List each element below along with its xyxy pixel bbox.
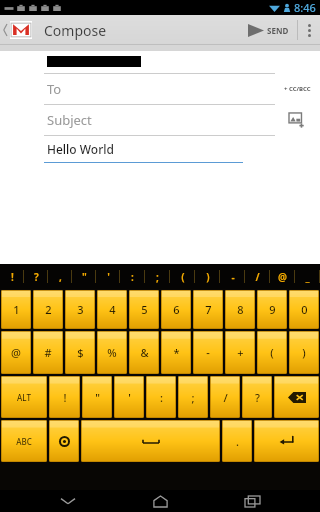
- button[interactable]: !: [49, 376, 80, 418]
- staticText: ;: [156, 270, 159, 284]
- staticText: ": [82, 270, 87, 284]
- button[interactable]: 1: [1, 290, 31, 329]
- button[interactable]: 7: [193, 290, 223, 329]
- staticText: ": [95, 390, 100, 405]
- staticText: _: [305, 270, 310, 284]
- button[interactable]: Enter: [254, 420, 319, 462]
- button[interactable]: 0: [289, 290, 319, 329]
- button[interactable]: ': [96, 264, 120, 289]
- button[interactable]: *: [161, 331, 191, 374]
- button[interactable]: %: [97, 331, 127, 374]
- button[interactable]: +: [225, 331, 255, 374]
- staticText: SEND: [267, 25, 289, 36]
- staticText: @: [11, 345, 21, 360]
- staticText: !: [63, 390, 67, 405]
- staticText: 1: [13, 302, 20, 317]
- staticText: 7: [205, 302, 212, 317]
- staticText: ,: [59, 270, 62, 284]
- button[interactable]: 6: [161, 290, 191, 329]
- button[interactable]: #: [33, 331, 63, 374]
- button[interactable]: 2: [33, 290, 63, 329]
- staticText: &: [140, 345, 149, 360]
- staticText: :: [131, 270, 134, 284]
- staticText: /: [255, 270, 260, 284]
- staticText: ): [302, 345, 306, 360]
- staticText: Hello World: [47, 141, 114, 157]
- button[interactable]: 3: [65, 290, 95, 329]
- button[interactable]: !: [0, 264, 24, 289]
- staticText: ;: [191, 390, 195, 405]
- staticText: Compose: [44, 21, 107, 40]
- staticText: Subject: [47, 111, 92, 129]
- button[interactable]: ABC: [1, 420, 47, 462]
- button[interactable]: + CC/BCC: [274, 74, 320, 104]
- button[interactable]: Space: [81, 420, 220, 462]
- button[interactable]: ?: [242, 376, 272, 418]
- staticText: + CC/BCC: [284, 85, 311, 93]
- button[interactable]: /: [210, 376, 240, 418]
- staticText: *: [173, 345, 180, 360]
- button[interactable]: ?: [24, 264, 48, 289]
- staticText: ALT: [17, 392, 31, 403]
- button[interactable]: ,: [48, 264, 72, 289]
- staticText: ?: [34, 270, 39, 284]
- button[interactable]: :: [146, 376, 176, 418]
- staticText: ': [107, 270, 110, 284]
- button[interactable]: Settings: [49, 420, 79, 462]
- staticText: !: [11, 270, 14, 284]
- button[interactable]: Recent apps: [224, 490, 280, 512]
- button[interactable]: (: [170, 264, 195, 289]
- button[interactable]: -: [193, 331, 223, 374]
- button[interactable]: &: [129, 331, 159, 374]
- staticText: ': [128, 390, 131, 405]
- button[interactable]: Delete: [274, 376, 319, 418]
- button[interactable]: Home: [132, 490, 188, 512]
- staticText: ): [206, 270, 210, 284]
- button[interactable]: 4: [97, 290, 127, 329]
- staticText: +: [237, 345, 244, 360]
- button[interactable]: Hello World: [0, 136, 320, 162]
- button[interactable]: ): [289, 331, 319, 374]
- staticText: To: [47, 80, 62, 98]
- button[interactable]: ": [72, 264, 96, 289]
- button[interactable]: 8: [225, 290, 255, 329]
- button[interactable]: Navigate up: [0, 21, 36, 39]
- staticText: (: [181, 270, 185, 284]
- button[interactable]: ALT: [1, 376, 47, 418]
- button[interactable]: /: [245, 264, 270, 289]
- staticText: (: [270, 345, 274, 360]
- button[interactable]: @: [270, 264, 295, 289]
- button[interactable]: Hide keyboard: [40, 490, 96, 512]
- button[interactable]: To: [0, 74, 274, 104]
- button[interactable]: -: [220, 264, 245, 289]
- button[interactable]: 5: [129, 290, 159, 329]
- button[interactable]: More options: [298, 15, 320, 45]
- button[interactable]: ": [82, 376, 112, 418]
- staticText: $: [77, 345, 84, 360]
- button[interactable]: ;: [178, 376, 208, 418]
- button[interactable]: ': [114, 376, 144, 418]
- staticText: %: [107, 345, 117, 360]
- staticText: @: [278, 270, 287, 284]
- button[interactable]: _: [295, 264, 320, 289]
- staticText: 5: [141, 302, 148, 317]
- button[interactable]: (: [257, 331, 287, 374]
- staticText: .: [236, 434, 239, 449]
- button[interactable]: :: [120, 264, 145, 289]
- staticText: /: [223, 390, 228, 405]
- button[interactable]: .: [222, 420, 252, 462]
- staticText: 3: [77, 302, 84, 317]
- staticText: 8: [237, 302, 244, 317]
- staticText: 4: [109, 302, 116, 317]
- button[interactable]: $: [65, 331, 95, 374]
- button[interactable]: 9: [257, 290, 287, 329]
- button[interactable]: ): [195, 264, 220, 289]
- staticText: 0: [301, 302, 308, 317]
- staticText: 8:46: [294, 0, 316, 15]
- button[interactable]: Subject: [0, 105, 274, 135]
- button[interactable]: SEND: [240, 15, 297, 45]
- button[interactable]: @: [1, 331, 31, 374]
- button[interactable]: ;: [145, 264, 170, 289]
- button[interactable]: Attach image: [274, 105, 320, 135]
- staticText: 6: [173, 302, 180, 317]
